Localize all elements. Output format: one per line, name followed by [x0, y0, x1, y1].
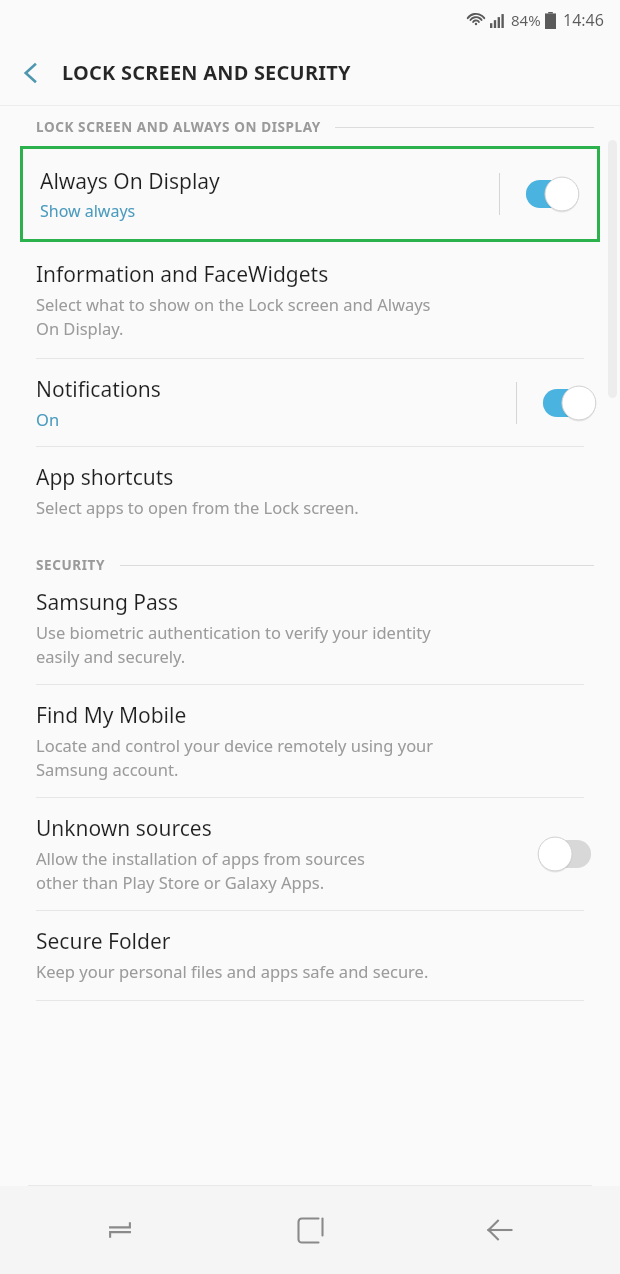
button[interactable]: Toggle on [521, 176, 579, 212]
staticText: LOCK SCREEN AND ALWAYS ON DISPLAY [36, 118, 321, 136]
staticText: Notifications [36, 375, 161, 404]
button[interactable]: Recents [50, 1186, 190, 1274]
button[interactable]: Samsung Pass [0, 588, 620, 684]
button[interactable]: Always On Display [23, 149, 597, 239]
staticText: On [36, 408, 60, 430]
staticText: Unknown sources [36, 814, 212, 843]
staticText: Select what to show on the Lock screen a… [36, 293, 431, 340]
button[interactable]: Find My Mobile [0, 685, 620, 797]
button[interactable]: Back [0, 40, 62, 105]
staticText: Samsung Pass [36, 588, 178, 617]
staticText: Secure Folder [36, 927, 171, 956]
button[interactable]: App shortcuts [0, 447, 620, 538]
button[interactable]: Notifications [0, 359, 620, 446]
staticText: SECURITY [36, 556, 106, 574]
staticText: Select apps to open from the Lock screen… [36, 496, 359, 518]
button[interactable]: Toggle on [538, 385, 596, 421]
button[interactable]: Unknown sources [0, 798, 620, 910]
button[interactable]: Home [240, 1186, 380, 1274]
button[interactable]: Back [430, 1186, 570, 1274]
staticText: Find My Mobile [36, 701, 187, 730]
staticText: Allow the installation of apps from sour… [36, 847, 365, 894]
staticText: Show always [40, 200, 136, 222]
staticText: LOCK SCREEN AND SECURITY [62, 59, 351, 86]
staticText: Locate and control your device remotely … [36, 734, 434, 781]
staticText: Always On Display [40, 167, 220, 196]
staticText: App shortcuts [36, 463, 174, 492]
staticText: 84% [511, 10, 541, 30]
staticText: Information and FaceWidgets [36, 260, 329, 289]
staticText: 14:46 [563, 9, 604, 31]
button[interactable]: Secure Folder [0, 911, 620, 1000]
button[interactable]: Information and FaceWidgets [0, 242, 620, 358]
staticText: Use biometric authentication to verify y… [36, 621, 431, 668]
button[interactable]: Toggle off [538, 836, 596, 872]
staticText: Keep your personal files and apps safe a… [36, 960, 429, 982]
